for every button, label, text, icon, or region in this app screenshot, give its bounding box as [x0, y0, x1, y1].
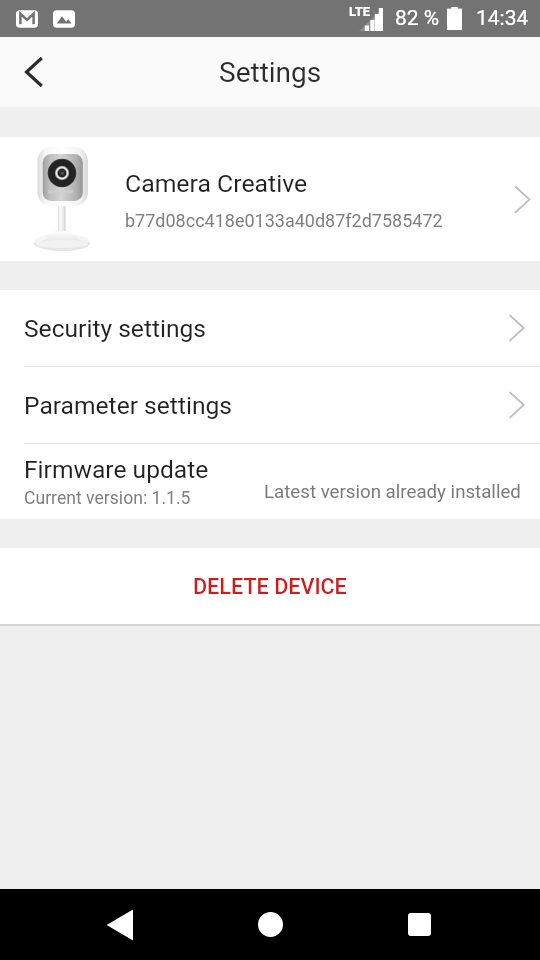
button[interactable]: Home — [236, 890, 305, 959]
button[interactable]: Firmware update — [0, 444, 540, 519]
staticText: Latest version already installed — [264, 481, 521, 503]
button[interactable]: Back — [0, 37, 68, 107]
staticText: b77d08cc418e0133a40d87f2d7585472 — [125, 210, 443, 231]
staticText: Settings — [219, 56, 322, 89]
staticText: LTE — [349, 4, 371, 19]
staticText: 14:34 — [476, 6, 529, 31]
staticText: Firmware update — [24, 455, 209, 484]
button[interactable]: Recent apps — [385, 890, 454, 959]
staticText: 82 % — [395, 6, 440, 31]
button[interactable]: Security settings — [0, 290, 540, 366]
staticText: Parameter settings — [24, 391, 233, 420]
staticText: Camera Creative — [125, 169, 308, 198]
staticText: DELETE DEVICE — [193, 574, 347, 599]
button[interactable]: Parameter settings — [0, 367, 540, 443]
staticText: Security settings — [24, 314, 207, 343]
button[interactable]: Camera Creative — [0, 137, 540, 261]
staticText: Current version: 1.1.5 — [24, 488, 191, 509]
button[interactable]: Back — [86, 890, 155, 959]
button[interactable]: DELETE DEVICE — [0, 548, 540, 624]
